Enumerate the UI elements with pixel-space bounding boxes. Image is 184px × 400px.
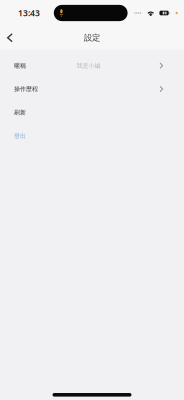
staticText: 暱稱 bbox=[14, 62, 26, 69]
button[interactable]: 登出 bbox=[0, 124, 184, 148]
staticText: 我是小編 bbox=[76, 62, 100, 69]
staticText: 13:43 bbox=[18, 7, 40, 19]
staticText: 設定 bbox=[84, 33, 100, 43]
staticText: 操作歷程 bbox=[14, 85, 38, 93]
staticText: 登出 bbox=[14, 132, 26, 140]
staticText: 刷新 bbox=[14, 109, 26, 116]
button[interactable]: 暱稱 bbox=[0, 54, 184, 77]
button[interactable]: 刷新 bbox=[0, 101, 184, 124]
button[interactable]: 操作歷程 bbox=[0, 77, 184, 101]
button[interactable]: Back bbox=[0, 28, 20, 48]
